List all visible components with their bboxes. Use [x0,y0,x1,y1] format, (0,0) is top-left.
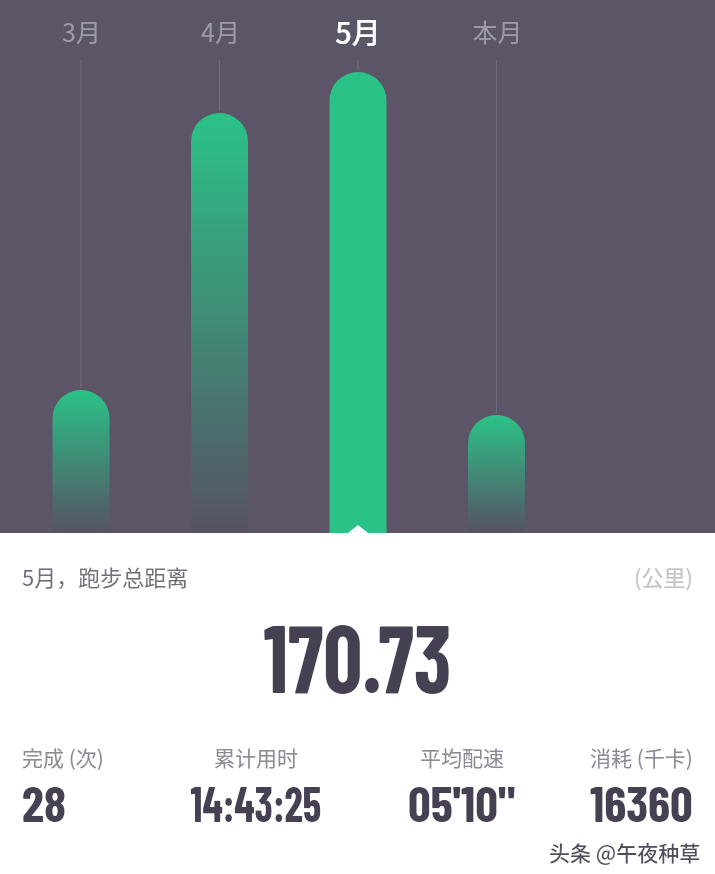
staticText: 3月 [62,13,101,49]
button[interactable]: 本月 [447,8,547,54]
staticText: 05'10" [408,772,516,832]
staticText: 完成 (次) [22,742,104,772]
button[interactable]: 3月 [31,8,131,54]
staticText: 14:43:25 [190,772,321,832]
staticText: 消耗 (千卡) [590,742,693,772]
staticText: 本月 [472,13,523,49]
staticText: 16360 [590,772,693,832]
staticText: 4月 [201,13,240,49]
staticText: 头条 @午夜种草 [549,837,701,867]
staticText: 5月 [335,10,381,52]
button[interactable]: 4月 [170,8,270,54]
staticText: (公里) [634,560,693,592]
staticText: 5月，跑步总距离 [22,560,189,592]
staticText: 平均配速 [420,742,504,772]
staticText: 累计用时 [214,742,298,772]
button[interactable]: 5月 [308,8,408,54]
staticText: 170.73 [263,597,452,712]
staticText: 28 [22,772,66,832]
